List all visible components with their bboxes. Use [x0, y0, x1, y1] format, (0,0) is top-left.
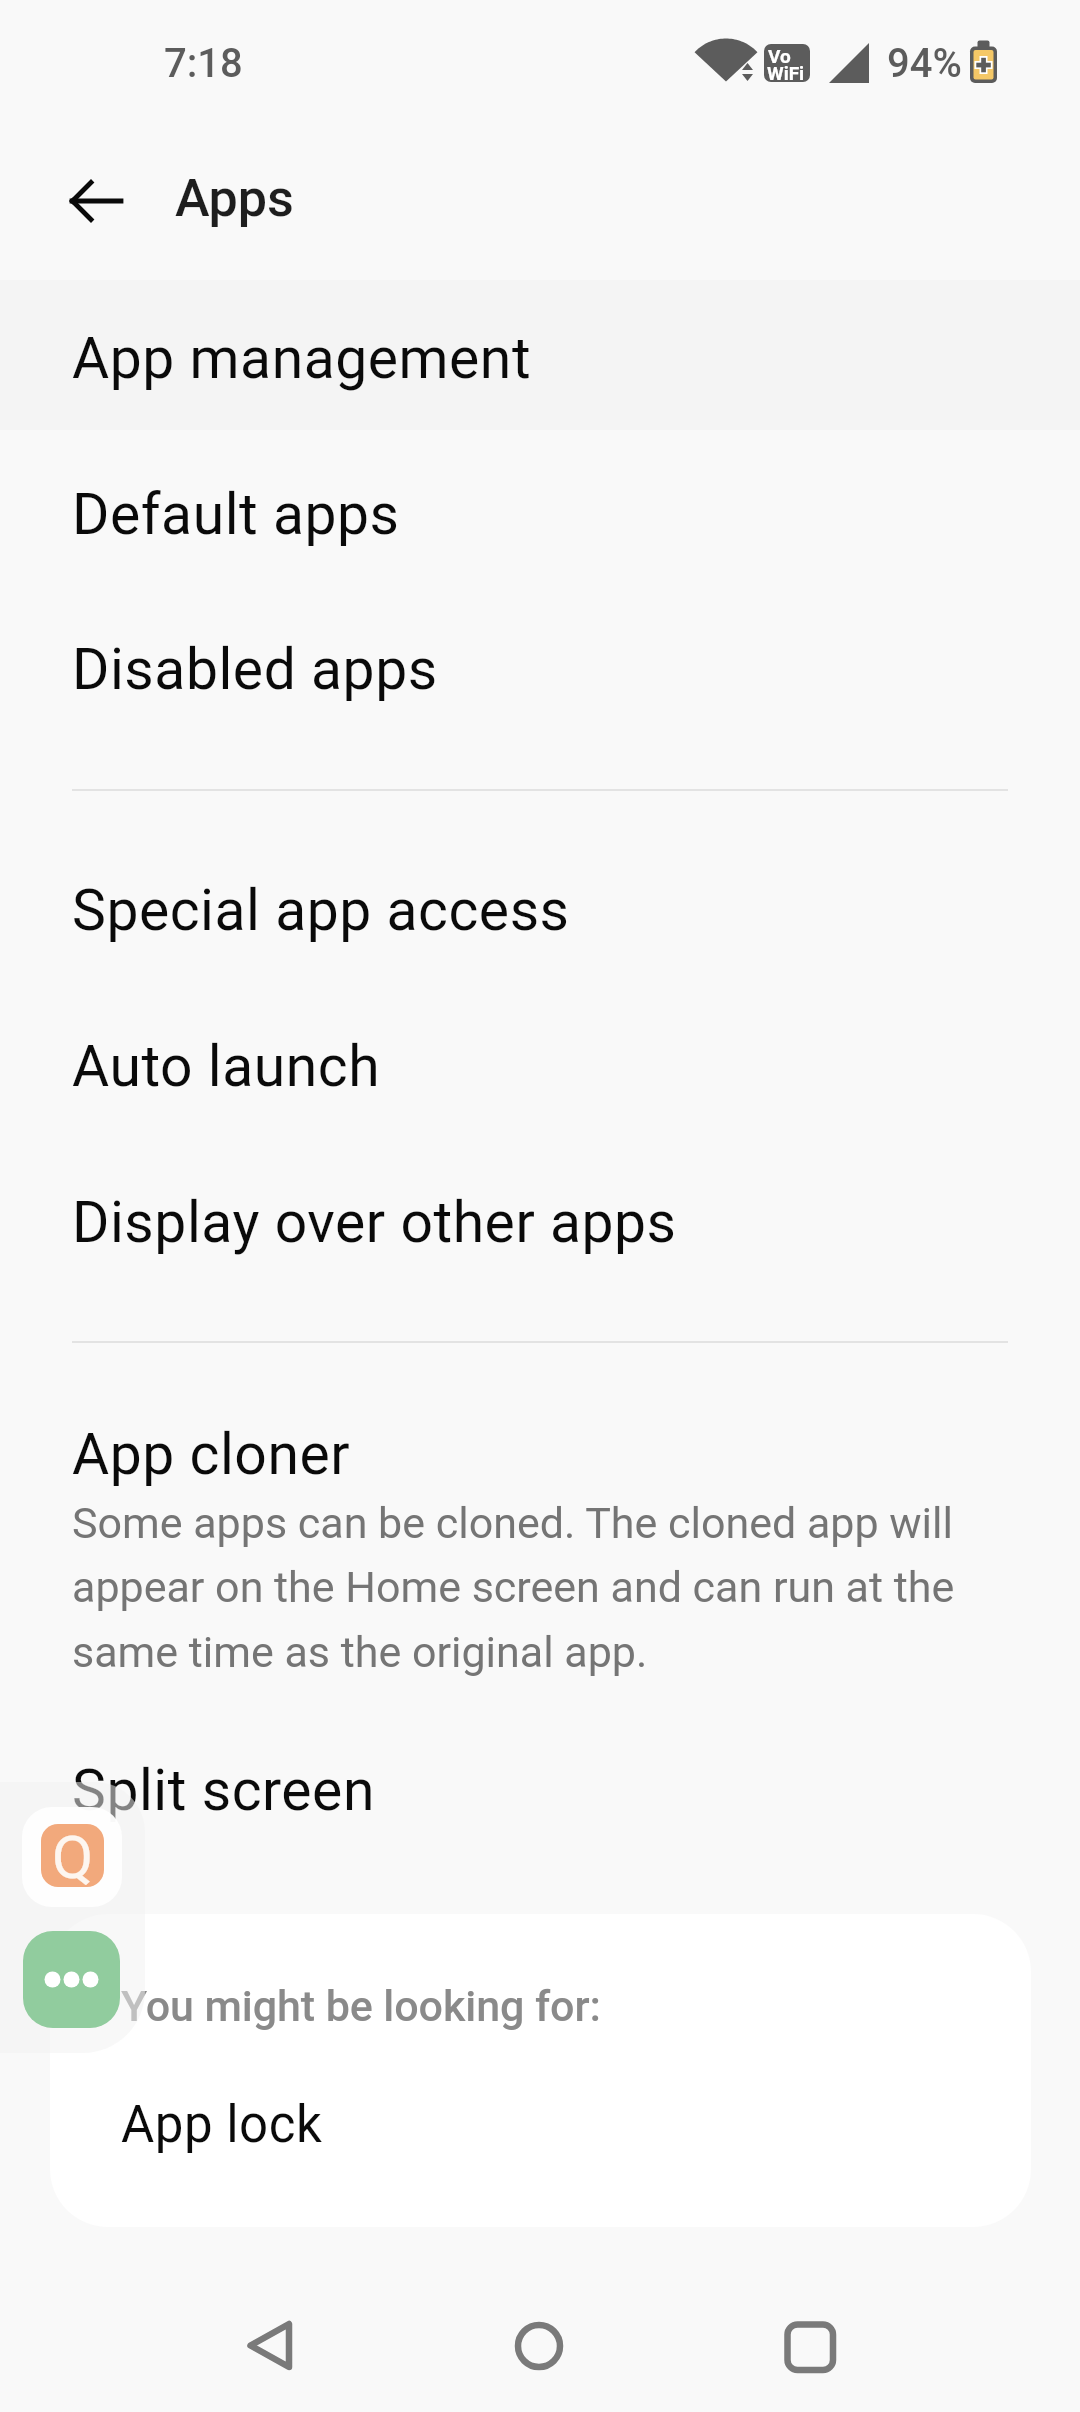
staticText: Disabled apps [72, 636, 438, 703]
button[interactable]: Auto launch [0, 988, 1080, 1144]
button[interactable]: App lock [50, 2054, 1031, 2194]
button[interactable]: Special app access [0, 832, 1080, 988]
button[interactable]: Back [40, 150, 152, 262]
button[interactable]: Home [479, 2300, 599, 2412]
button[interactable]: Default apps [0, 430, 1080, 586]
staticText: WiFi [767, 62, 805, 82]
staticText: App lock [121, 2095, 323, 2155]
button[interactable]: Split screen [0, 1712, 1080, 1868]
button[interactable]: Smart sidebar [0, 1782, 145, 2053]
other: More [23, 1931, 120, 2028]
staticText: Display over other apps [72, 1189, 677, 1256]
staticText: 7:18 [164, 40, 243, 87]
button[interactable]: App cloner [0, 1390, 1080, 1712]
staticText: 94% [887, 40, 962, 87]
button[interactable]: App management [0, 280, 1080, 430]
staticText: Apps [175, 168, 294, 229]
button[interactable]: Disabled apps [0, 586, 1080, 741]
staticText: Q [52, 1824, 94, 1885]
button[interactable]: Back [210, 2300, 330, 2412]
staticText: Default apps [72, 481, 400, 548]
staticText: Split screen [72, 1757, 375, 1824]
staticText: App cloner [72, 1421, 351, 1488]
staticText: App management [72, 325, 532, 392]
staticText: You might be looking for: [121, 1981, 601, 2031]
staticText: Auto launch [72, 1033, 381, 1100]
staticText: Vo [768, 45, 791, 67]
staticText: Special app access [72, 877, 570, 944]
staticText: Some apps can be cloned. The cloned app … [72, 1498, 972, 1678]
button[interactable]: Display over other apps [0, 1144, 1080, 1300]
button[interactable]: Recent apps [749, 2300, 869, 2412]
